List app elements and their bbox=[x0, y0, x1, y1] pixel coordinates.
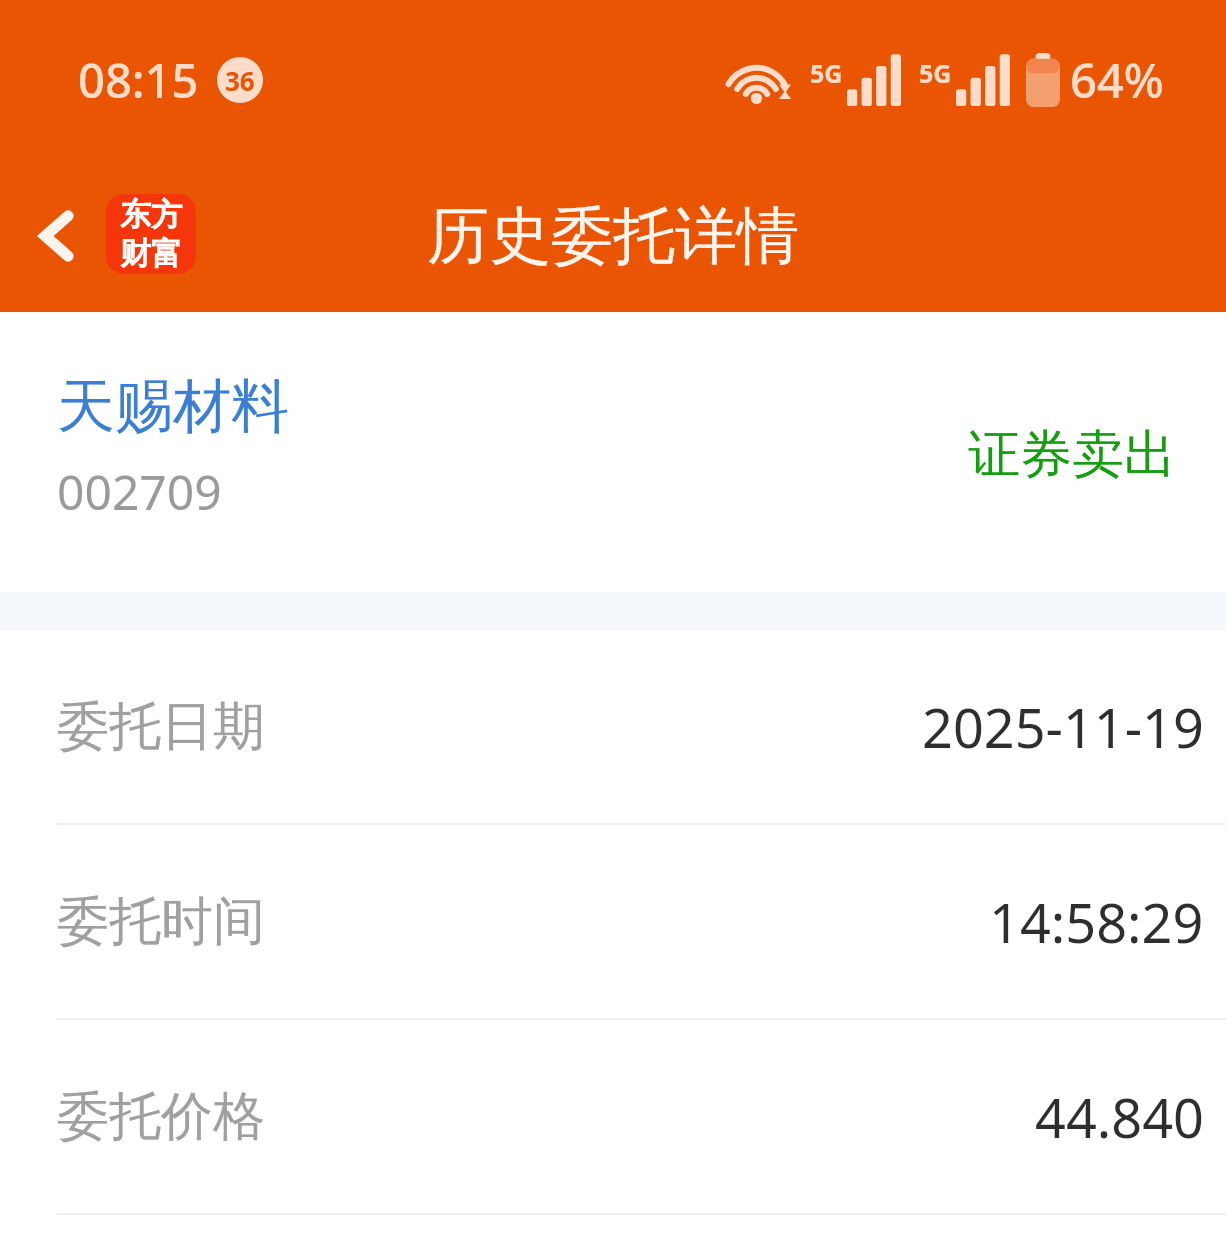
staticText: 2025-11-19 bbox=[922, 690, 1204, 764]
staticText: 08:15 bbox=[78, 48, 199, 112]
staticText: 天赐材料 bbox=[57, 370, 289, 443]
staticText: 64% bbox=[1070, 48, 1164, 112]
staticText: 5G bbox=[919, 56, 952, 90]
button[interactable]: 委托价格 bbox=[0, 1020, 1226, 1213]
staticText: 14:58:29 bbox=[989, 885, 1204, 959]
staticText: 历史委托详情 bbox=[427, 197, 799, 275]
staticText: 委托日期 bbox=[57, 694, 265, 760]
staticText: 5G bbox=[810, 56, 843, 90]
staticText: 东方 bbox=[120, 195, 182, 234]
staticText: 36 bbox=[225, 63, 255, 98]
button[interactable]: 委托日期 bbox=[0, 630, 1226, 823]
staticText: 证券卖出 bbox=[968, 422, 1176, 488]
button[interactable]: Back bbox=[12, 190, 104, 282]
staticText: 委托时间 bbox=[57, 889, 265, 955]
staticText: 财富 bbox=[120, 234, 182, 273]
staticText: 委托价格 bbox=[57, 1084, 265, 1150]
staticText: 002709 bbox=[57, 459, 222, 524]
button[interactable]: 委托时间 bbox=[0, 825, 1226, 1018]
button[interactable]: East Money logo bbox=[106, 194, 196, 274]
staticText: 44.840 bbox=[1035, 1080, 1204, 1154]
